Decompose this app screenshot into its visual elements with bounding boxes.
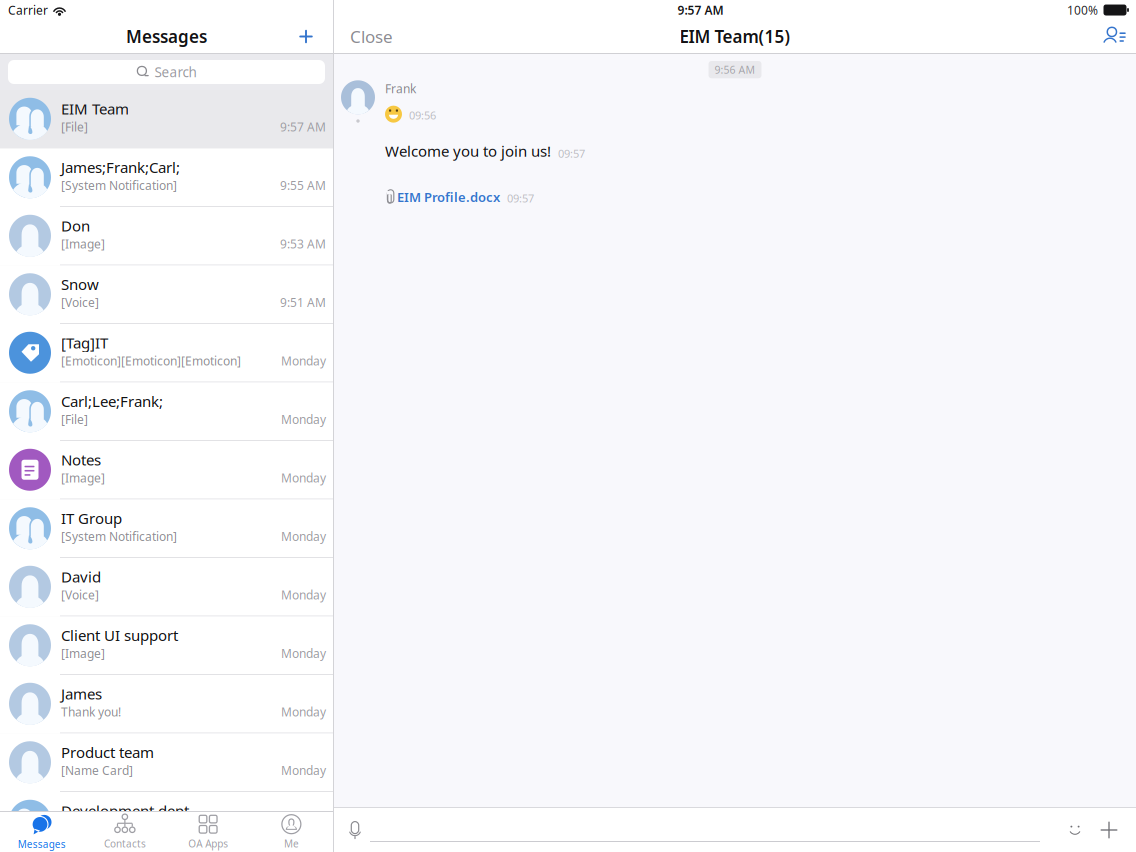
staticText: Monday: [281, 704, 326, 720]
staticText: Monday: [281, 528, 326, 545]
staticText: Contacts: [104, 837, 146, 850]
staticText: 9:57 AM: [280, 119, 326, 135]
button[interactable]: More: [1092, 808, 1126, 852]
staticText: Close: [350, 25, 393, 48]
staticText: [Image]: [61, 470, 105, 486]
staticText: Monday: [281, 645, 326, 662]
button[interactable]: IT Group: [0, 499, 333, 558]
button[interactable]: Development dept: [0, 792, 333, 850]
button[interactable]: Carl;Lee;Frank;: [0, 382, 333, 441]
button[interactable]: Voice message: [340, 808, 370, 852]
button[interactable]: OA Apps: [166, 812, 250, 852]
staticText: Monday: [281, 470, 326, 486]
staticText: EIM Team: [61, 98, 129, 119]
staticText: Carl;Lee;Frank;: [61, 391, 163, 411]
staticText: 9:55 AM: [280, 177, 326, 194]
staticText: IT Group: [61, 508, 122, 528]
staticText: 09:57: [507, 191, 534, 206]
staticText: 9:51 AM: [280, 294, 326, 311]
button[interactable]: Messages: [0, 812, 83, 852]
button[interactable]: [Tag]IT: [0, 324, 333, 382]
staticText: [File]: [61, 119, 88, 135]
staticText: Welcome you to join us!: [385, 141, 551, 161]
staticText: 9:56 AM: [714, 62, 755, 77]
staticText: Monday: [281, 762, 326, 779]
button[interactable]: David: [0, 558, 333, 616]
staticText: Monday: [281, 411, 326, 428]
staticText: Monday: [281, 821, 326, 837]
staticText: [Image]: [61, 645, 105, 662]
staticText: [Image]: [61, 236, 105, 252]
staticText: Thank you!: [61, 704, 121, 720]
staticText: [Voice]: [61, 294, 99, 311]
button[interactable]: Snow: [0, 265, 333, 324]
staticText: [Name Card]: [61, 762, 133, 779]
staticText: Messages: [18, 837, 66, 851]
staticText: [Emoticon][Emoticon][Emoticon]: [61, 353, 241, 369]
staticText: Search: [154, 63, 196, 81]
staticText: [System Notification]: [61, 177, 177, 194]
staticText: 9:57 AM: [677, 2, 723, 18]
button[interactable]: Client UI support: [0, 616, 333, 675]
button[interactable]: New message: [279, 20, 333, 53]
staticText: David: [61, 566, 101, 587]
staticText: Me: [284, 837, 299, 850]
staticText: Monday: [281, 353, 326, 369]
staticText: James: [61, 683, 102, 704]
staticText: 100%: [1067, 2, 1098, 18]
staticText: Product team: [61, 742, 154, 762]
staticText: Client UI support: [61, 625, 178, 645]
staticText: Notes: [61, 449, 101, 470]
staticText: [Voice]: [61, 587, 99, 603]
button[interactable]: EIM Team: [0, 90, 333, 148]
staticText: OA Apps: [188, 837, 228, 850]
staticText: Carrier: [8, 2, 48, 18]
staticText: EIM Team(15): [679, 25, 790, 48]
staticText: EIM Profile.docx: [397, 188, 500, 206]
button[interactable]: James: [0, 675, 333, 733]
button[interactable]: James;Frank;Carl;: [0, 148, 333, 207]
staticText: 9:53 AM: [280, 236, 326, 252]
staticText: James;Frank;Carl;: [61, 157, 180, 177]
staticText: Snow: [61, 274, 99, 294]
staticText: [Tag]IT: [61, 332, 108, 353]
staticText: 09:57: [558, 146, 585, 161]
button[interactable]: Product team: [0, 733, 333, 792]
staticText: 09:56: [409, 108, 436, 123]
button[interactable]: Emoji: [1058, 808, 1092, 852]
staticText: [System Notification]: [61, 528, 177, 545]
staticText: Development dept: [61, 800, 189, 821]
button[interactable]: Notes: [0, 441, 333, 499]
button[interactable]: Me: [250, 812, 333, 852]
button[interactable]: Contacts: [83, 812, 166, 852]
button[interactable]: Don: [0, 207, 333, 265]
staticText: [File]: [61, 411, 88, 428]
button[interactable]: Search: [0, 54, 333, 90]
button[interactable]: Group members: [1094, 20, 1136, 53]
staticText: Don: [61, 215, 90, 236]
staticText: Frank: [385, 80, 416, 97]
button[interactable]: Close: [334, 20, 407, 53]
staticText: Monday: [281, 587, 326, 603]
staticText: Messages: [126, 25, 207, 48]
